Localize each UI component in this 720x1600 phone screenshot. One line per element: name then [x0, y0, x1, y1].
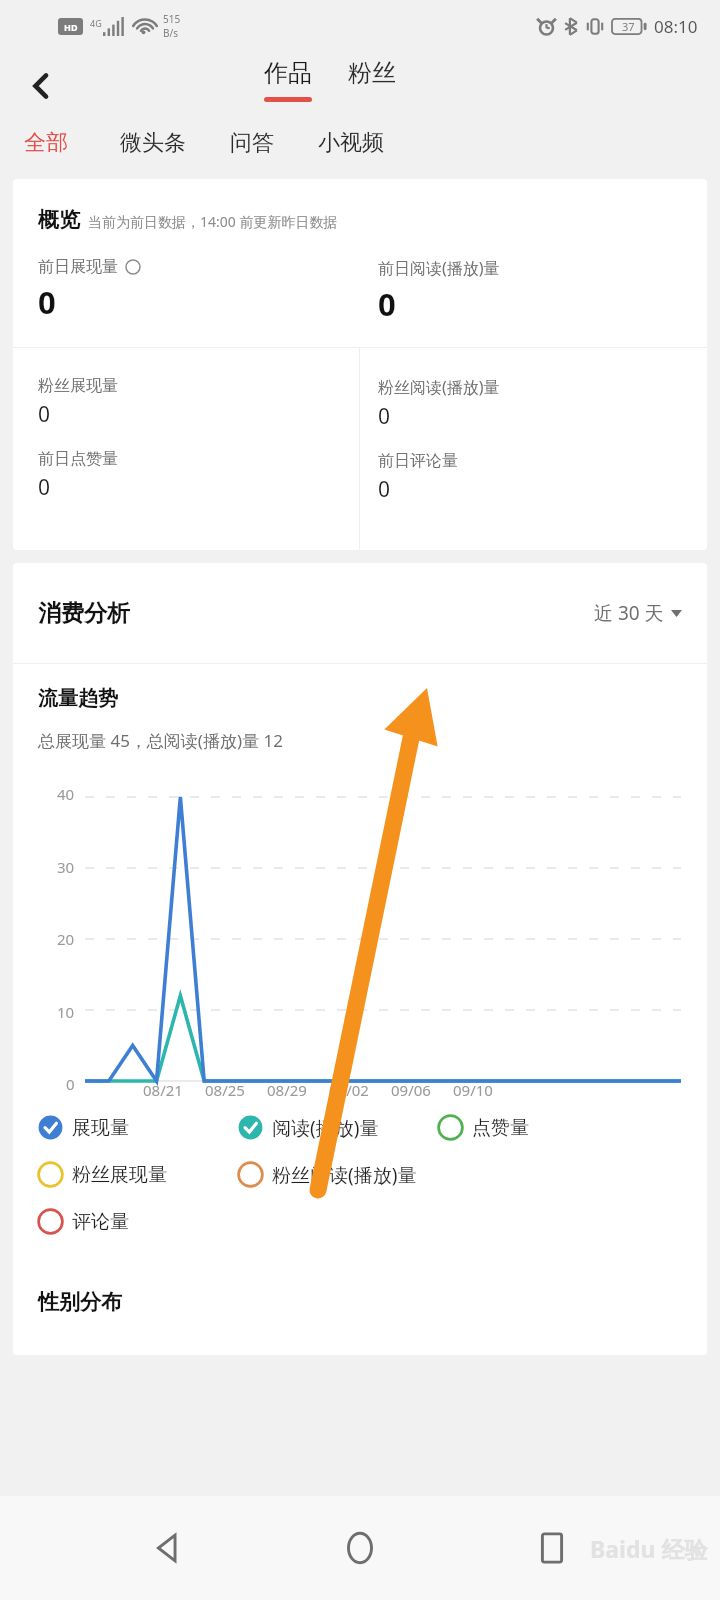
button[interactable]: 阅读(播放)量	[237, 1114, 437, 1141]
staticText: 粉丝阅读(播放)量	[272, 1162, 417, 1188]
staticText: Baidu 经验	[590, 1533, 708, 1564]
staticText: HD	[64, 21, 78, 33]
staticText: 流量趋势	[38, 686, 118, 711]
button[interactable]: 问答	[230, 129, 274, 157]
button[interactable]: Help	[125, 259, 141, 275]
button[interactable]: Home	[327, 1515, 393, 1581]
staticText: 37	[622, 19, 635, 34]
staticText: 10	[57, 1002, 75, 1022]
staticText: 前日阅读(播放)量	[378, 257, 500, 279]
staticText: 08:10	[654, 15, 698, 38]
staticText: 0	[38, 473, 51, 502]
staticText: 0	[38, 400, 51, 429]
staticText: 近 30 天	[594, 600, 664, 626]
button[interactable]: Back	[12, 57, 70, 115]
staticText: 问答	[230, 129, 274, 157]
staticText: 4G	[90, 17, 102, 29]
staticText: 小视频	[318, 129, 384, 157]
button[interactable]: 点赞量	[437, 1114, 529, 1141]
staticText: 0	[378, 283, 396, 325]
staticText: 08/29	[267, 1080, 307, 1100]
staticText: B/s	[163, 26, 179, 40]
button[interactable]: 作品	[258, 58, 318, 102]
staticText: 0	[378, 402, 391, 431]
button[interactable]: Recents	[519, 1515, 585, 1581]
button[interactable]: 展现量	[37, 1114, 237, 1141]
button[interactable]: 粉丝	[342, 58, 402, 88]
staticText: 0	[66, 1074, 75, 1094]
staticText: 总展现量 45，总阅读(播放)量 12	[38, 729, 283, 752]
staticText: 20	[57, 929, 75, 949]
staticText: 性别分布	[38, 1289, 122, 1315]
button[interactable]: Back	[135, 1515, 201, 1581]
button[interactable]: 微头条	[120, 129, 186, 157]
staticText: 前日点赞量	[38, 449, 118, 469]
staticText: 前日评论量	[378, 451, 458, 471]
staticText: 0	[38, 281, 56, 323]
staticText: 0	[378, 475, 391, 504]
staticText: 30	[57, 857, 75, 877]
staticText: 概览	[38, 207, 80, 233]
button[interactable]: 全部	[24, 129, 68, 157]
staticText: 微头条	[120, 129, 186, 157]
staticText: 08/21	[143, 1080, 183, 1100]
staticText: 粉丝阅读(播放)量	[378, 376, 500, 398]
staticText: 09/10	[453, 1080, 493, 1100]
button[interactable]: 小视频	[318, 129, 384, 157]
staticText: 点赞量	[472, 1116, 529, 1140]
staticText: 前日展现量	[38, 257, 118, 277]
button[interactable]: 近 30 天	[594, 600, 682, 626]
button[interactable]: 粉丝展现量	[37, 1161, 237, 1188]
staticText: 09/06	[391, 1080, 431, 1100]
button[interactable]: 粉丝阅读(播放)量	[237, 1161, 417, 1188]
staticText: 当前为前日数据，14:00 前更新昨日数据	[88, 212, 338, 231]
staticText: 消费分析	[38, 599, 130, 628]
staticText: 09/02	[329, 1080, 369, 1100]
button[interactable]: 评论量	[37, 1208, 129, 1235]
staticText: 评论量	[72, 1210, 129, 1234]
staticText: 展现量	[72, 1116, 129, 1140]
staticText: 阅读(播放)量	[272, 1115, 379, 1141]
staticText: 515	[163, 12, 181, 26]
staticText: 40	[57, 784, 75, 804]
staticText: 粉丝	[348, 58, 396, 88]
staticText: 08/25	[205, 1080, 245, 1100]
staticText: 全部	[24, 129, 68, 157]
staticText: 粉丝展现量	[72, 1163, 167, 1187]
staticText: 粉丝展现量	[38, 376, 118, 396]
staticText: 作品	[264, 58, 312, 88]
